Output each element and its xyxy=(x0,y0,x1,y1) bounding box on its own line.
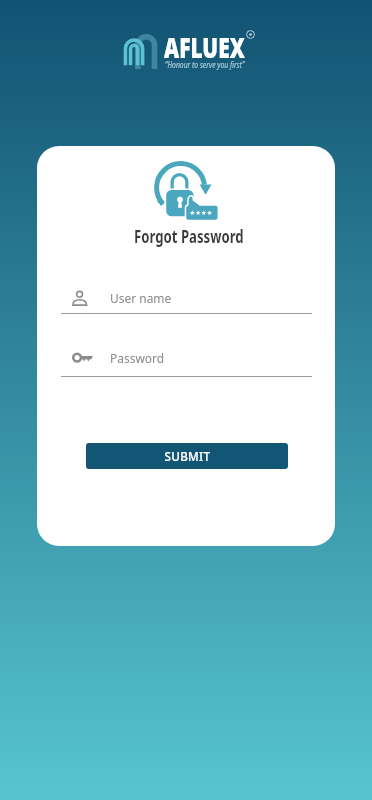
staticText: “Honour to serve you first” xyxy=(165,59,245,70)
staticText: SUBMIT xyxy=(165,447,210,465)
staticText: User name xyxy=(110,289,172,307)
staticText: AFLUEX xyxy=(164,27,245,66)
staticText: Forgot Password xyxy=(134,225,244,248)
staticText: Password xyxy=(110,349,164,367)
button[interactable]: SUBMIT xyxy=(86,443,288,469)
button[interactable]: Password xyxy=(61,347,312,377)
button[interactable]: User name xyxy=(61,287,312,314)
